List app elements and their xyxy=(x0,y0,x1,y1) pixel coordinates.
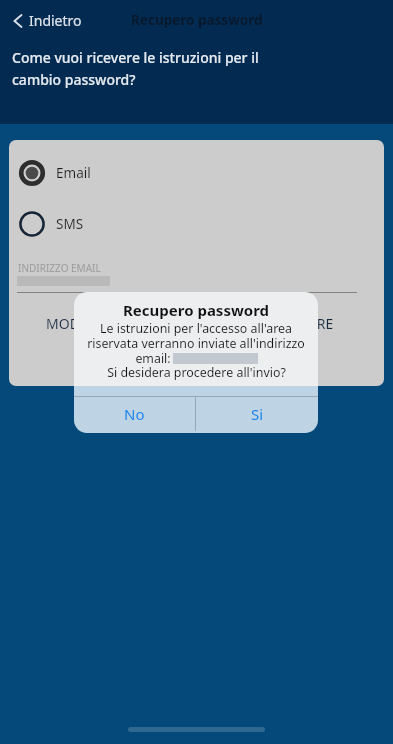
staticText: Si xyxy=(251,404,264,424)
staticText: Email xyxy=(56,164,91,182)
staticText: Indietro xyxy=(29,11,82,30)
staticText: MODIFICA EMAIL xyxy=(46,314,160,333)
staticText: Come vuoi ricevere le istruzioni per il … xyxy=(12,48,259,89)
staticText: email: xyxy=(135,350,171,367)
staticText: No xyxy=(124,404,145,424)
button[interactable]: Email xyxy=(9,157,384,189)
button[interactable]: SMS xyxy=(9,208,384,240)
staticText: INDIRIZZO EMAIL xyxy=(18,261,101,275)
staticText: SMS xyxy=(56,215,84,233)
button[interactable]: Indietro xyxy=(0,5,92,36)
button[interactable]: PROSEGUIRE xyxy=(197,306,384,340)
staticText: riservata verranno inviate all'indirizzo xyxy=(87,335,305,352)
button[interactable]: Si xyxy=(196,396,318,431)
staticText: Si desidera procedere all'invio? xyxy=(107,364,286,381)
staticText: Le istruzioni per l'accesso all'area xyxy=(100,320,292,337)
staticText: PROSEGUIRE xyxy=(248,314,334,333)
staticText: Recupero password xyxy=(131,11,263,29)
other: Indietro xyxy=(13,13,23,29)
button[interactable]: MODIFICA EMAIL xyxy=(9,306,197,340)
button[interactable]: No xyxy=(74,396,195,431)
staticText: Recupero password xyxy=(123,300,270,320)
